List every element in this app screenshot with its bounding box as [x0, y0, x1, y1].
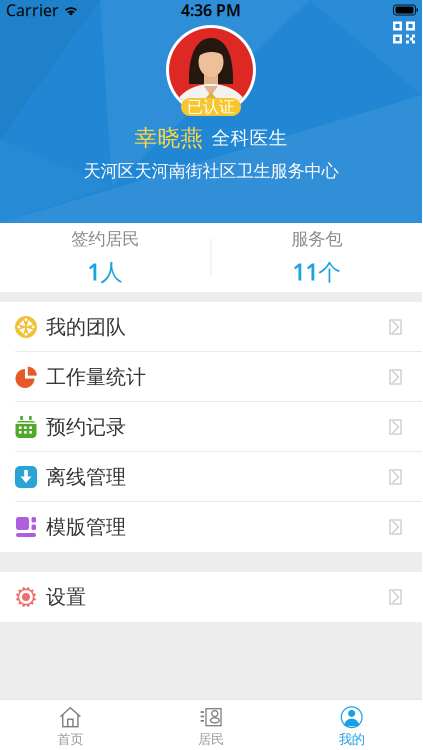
staticText: 我的团队	[46, 315, 126, 339]
staticText: 4:36 PM	[181, 0, 241, 21]
staticText: 我的	[339, 731, 365, 748]
staticText: 工作量统计	[46, 365, 146, 389]
button[interactable]: 二维码	[393, 21, 415, 43]
button[interactable]: 我的团队	[0, 302, 422, 352]
button[interactable]: 预约记录	[0, 402, 422, 452]
staticText: 天河区天河南街社区卫生服务中心	[83, 160, 338, 182]
staticText: 离线管理	[46, 465, 126, 489]
button[interactable]: 签约居民	[0, 228, 211, 287]
staticText: 签约居民	[71, 228, 139, 250]
staticText: 居民	[198, 731, 224, 748]
staticText: 全科医生	[211, 126, 287, 149]
staticText: Carrier	[6, 0, 59, 21]
button[interactable]: 离线管理	[0, 452, 422, 502]
button[interactable]: 我的	[281, 700, 422, 750]
staticText: 服务包	[291, 228, 342, 250]
staticText: 11个	[292, 257, 341, 287]
button[interactable]: 服务包	[211, 228, 422, 287]
staticText: 1人	[87, 257, 123, 287]
staticText: 首页	[57, 731, 83, 748]
button[interactable]: 工作量统计	[0, 352, 422, 402]
button[interactable]: 已认证	[181, 97, 241, 117]
staticText: 已认证	[187, 97, 235, 117]
staticText: 幸晓燕	[134, 124, 203, 152]
staticText: 预约记录	[46, 415, 126, 439]
button[interactable]: 首页	[0, 700, 141, 750]
staticText: 模版管理	[46, 515, 126, 539]
button[interactable]: 模版管理	[0, 502, 422, 552]
staticText: 设置	[46, 585, 86, 609]
button[interactable]: 居民	[141, 700, 281, 750]
button[interactable]: 设置	[0, 572, 422, 622]
